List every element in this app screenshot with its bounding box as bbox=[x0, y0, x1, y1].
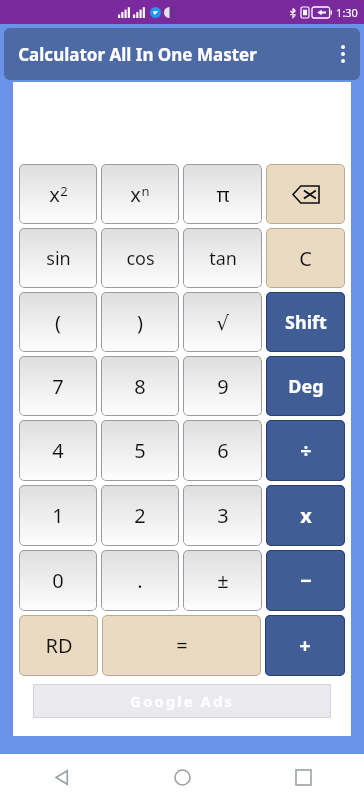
staticText: ÷ bbox=[300, 437, 312, 464]
staticText: = bbox=[176, 632, 188, 659]
staticText: n bbox=[141, 182, 150, 200]
button[interactable]: x bbox=[19, 164, 97, 224]
staticText: 6 bbox=[217, 437, 229, 464]
button[interactable]: . bbox=[101, 550, 179, 611]
staticText: cos bbox=[126, 246, 155, 271]
button[interactable]: 6 bbox=[183, 420, 262, 481]
staticText: Deg bbox=[288, 374, 324, 399]
button[interactable]: 7 bbox=[19, 356, 97, 416]
staticText: 4 bbox=[52, 437, 64, 464]
staticText: π bbox=[216, 181, 230, 208]
button[interactable]: ( bbox=[19, 292, 97, 352]
staticText: 3 bbox=[217, 502, 229, 529]
button[interactable]: Recent apps bbox=[243, 754, 364, 800]
staticText: sin bbox=[46, 246, 71, 271]
staticText: ) bbox=[137, 309, 143, 336]
button[interactable]: Google Ads bbox=[33, 684, 331, 718]
button[interactable]: tan bbox=[183, 228, 262, 288]
staticText: x bbox=[49, 181, 60, 208]
button[interactable]: √ bbox=[183, 292, 262, 352]
staticText: 1:30 bbox=[336, 5, 358, 20]
staticText: ± bbox=[217, 567, 229, 594]
staticText: 2 bbox=[134, 502, 146, 529]
button[interactable]: 0 bbox=[19, 550, 97, 611]
button[interactable]: 1 bbox=[19, 485, 97, 546]
staticText: x bbox=[300, 502, 312, 529]
staticText: tan bbox=[209, 246, 237, 271]
button[interactable]: x bbox=[101, 164, 179, 224]
button[interactable]: 2 bbox=[101, 485, 179, 546]
button[interactable]: Deg bbox=[266, 356, 345, 416]
staticText: C bbox=[299, 245, 312, 272]
button[interactable]: x bbox=[266, 485, 345, 546]
staticText: 9 bbox=[217, 373, 229, 400]
button[interactable]: ± bbox=[183, 550, 262, 611]
staticText: ( bbox=[55, 309, 61, 336]
button[interactable]: RD bbox=[19, 615, 98, 676]
button[interactable]: C bbox=[266, 228, 345, 288]
button[interactable]: 5 bbox=[101, 420, 179, 481]
button[interactable]: More options bbox=[326, 28, 360, 80]
button[interactable]: = bbox=[102, 615, 261, 676]
button[interactable]: − bbox=[266, 550, 345, 611]
button[interactable]: 9 bbox=[183, 356, 262, 416]
staticText: . bbox=[137, 567, 143, 594]
button[interactable]: Backspace bbox=[266, 164, 345, 224]
staticText: Calculator All In One Master bbox=[18, 43, 257, 66]
staticText: √ bbox=[216, 311, 229, 334]
staticText: Google Ads bbox=[130, 691, 234, 711]
staticText: x bbox=[130, 181, 141, 208]
button[interactable]: π bbox=[183, 164, 262, 224]
button[interactable]: Home bbox=[122, 754, 243, 800]
button[interactable]: 4 bbox=[19, 420, 97, 481]
staticText: 1 bbox=[52, 502, 64, 529]
staticText: Shift bbox=[285, 310, 327, 335]
staticText: 5 bbox=[134, 437, 146, 464]
staticText: − bbox=[300, 567, 312, 594]
staticText: RD bbox=[45, 632, 73, 659]
button[interactable]: 3 bbox=[183, 485, 262, 546]
button[interactable]: 8 bbox=[101, 356, 179, 416]
button[interactable]: ÷ bbox=[266, 420, 345, 481]
button[interactable]: sin bbox=[19, 228, 97, 288]
staticText: 2 bbox=[60, 182, 68, 200]
button[interactable]: ) bbox=[101, 292, 179, 352]
button[interactable]: + bbox=[265, 615, 345, 676]
staticText: + bbox=[299, 632, 311, 659]
button[interactable]: Back bbox=[0, 754, 122, 800]
staticText: 8 bbox=[134, 373, 146, 400]
staticText: 0 bbox=[52, 567, 64, 594]
button[interactable]: cos bbox=[101, 228, 179, 288]
button[interactable]: Shift bbox=[266, 292, 345, 352]
staticText: 7 bbox=[52, 373, 64, 400]
